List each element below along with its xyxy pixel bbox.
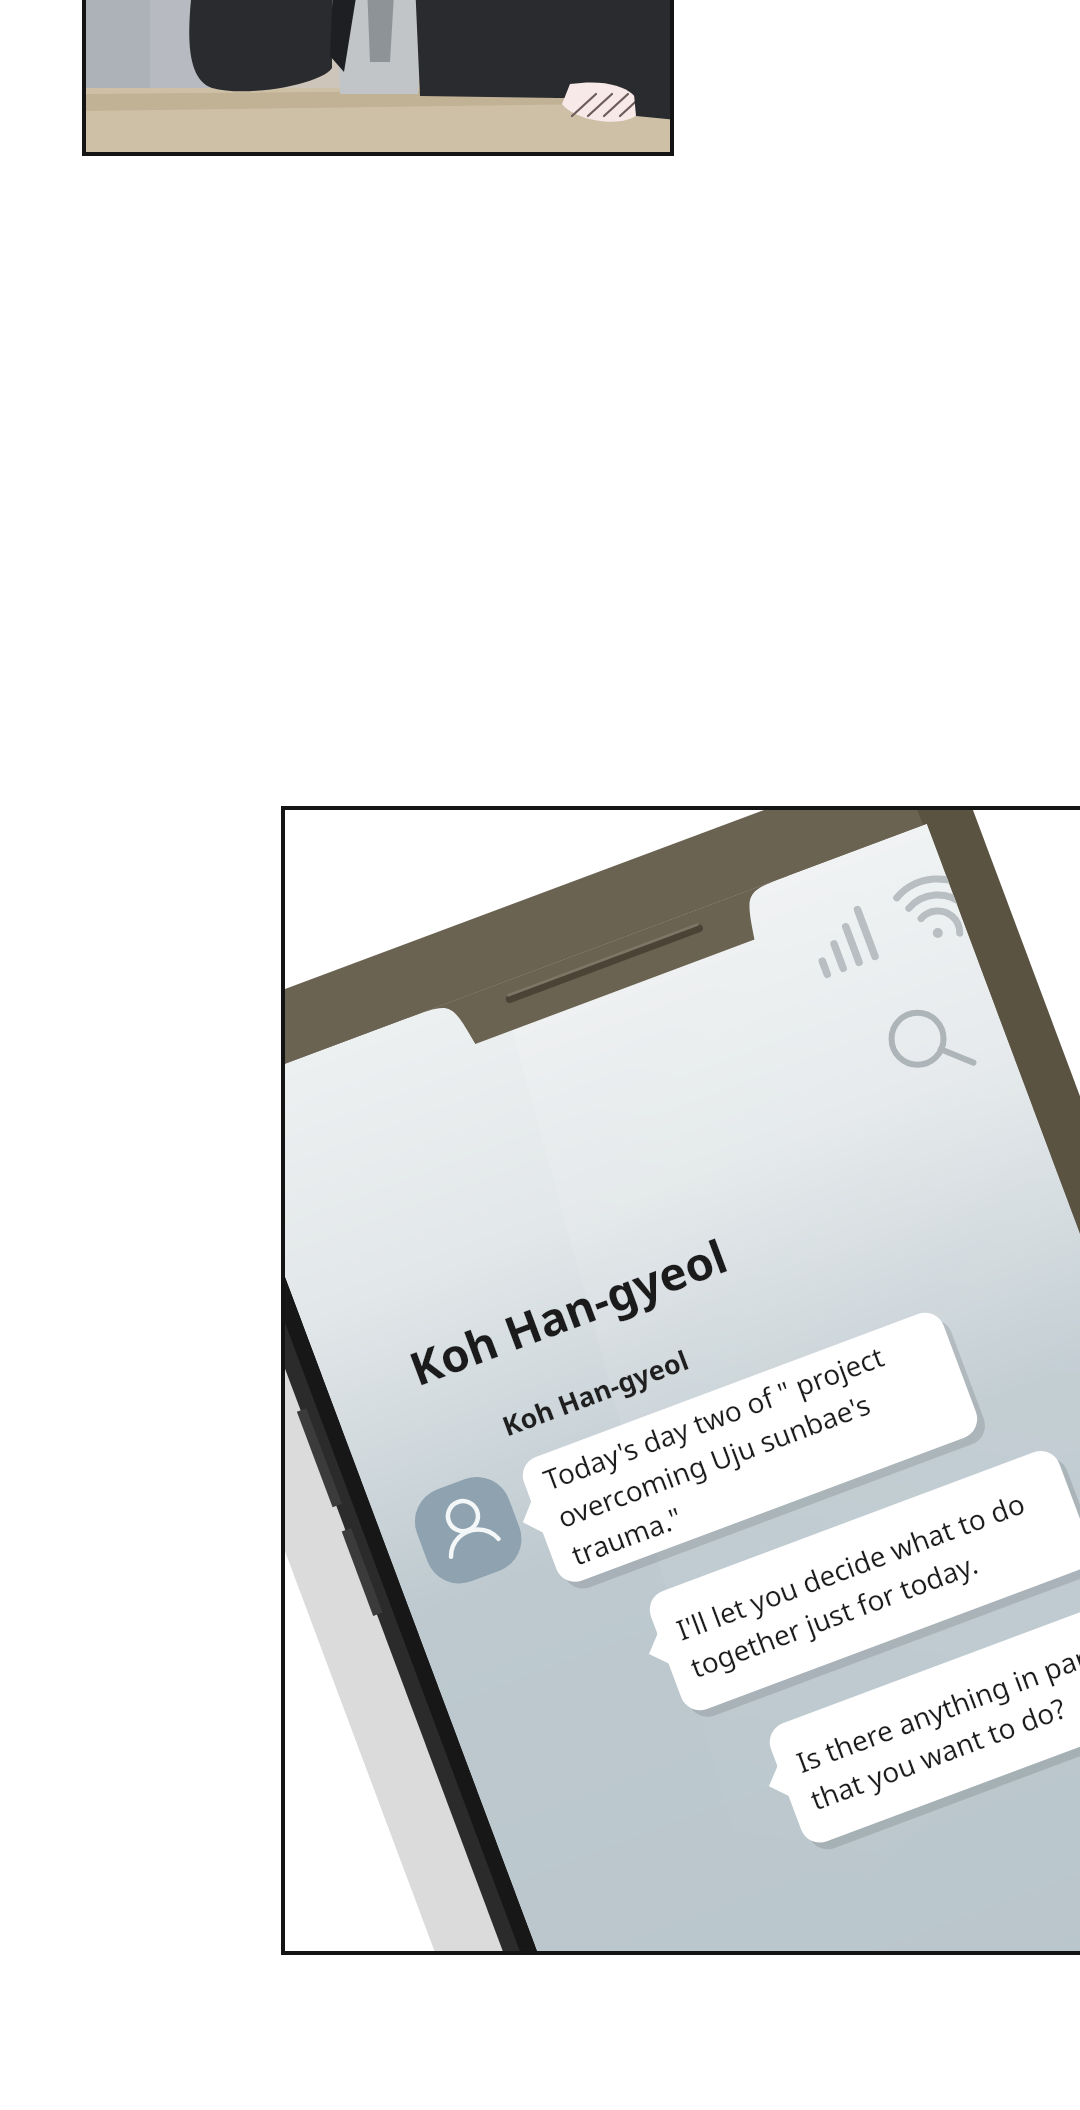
button[interactable]: Webtoon chat page xyxy=(0,0,1080,2110)
